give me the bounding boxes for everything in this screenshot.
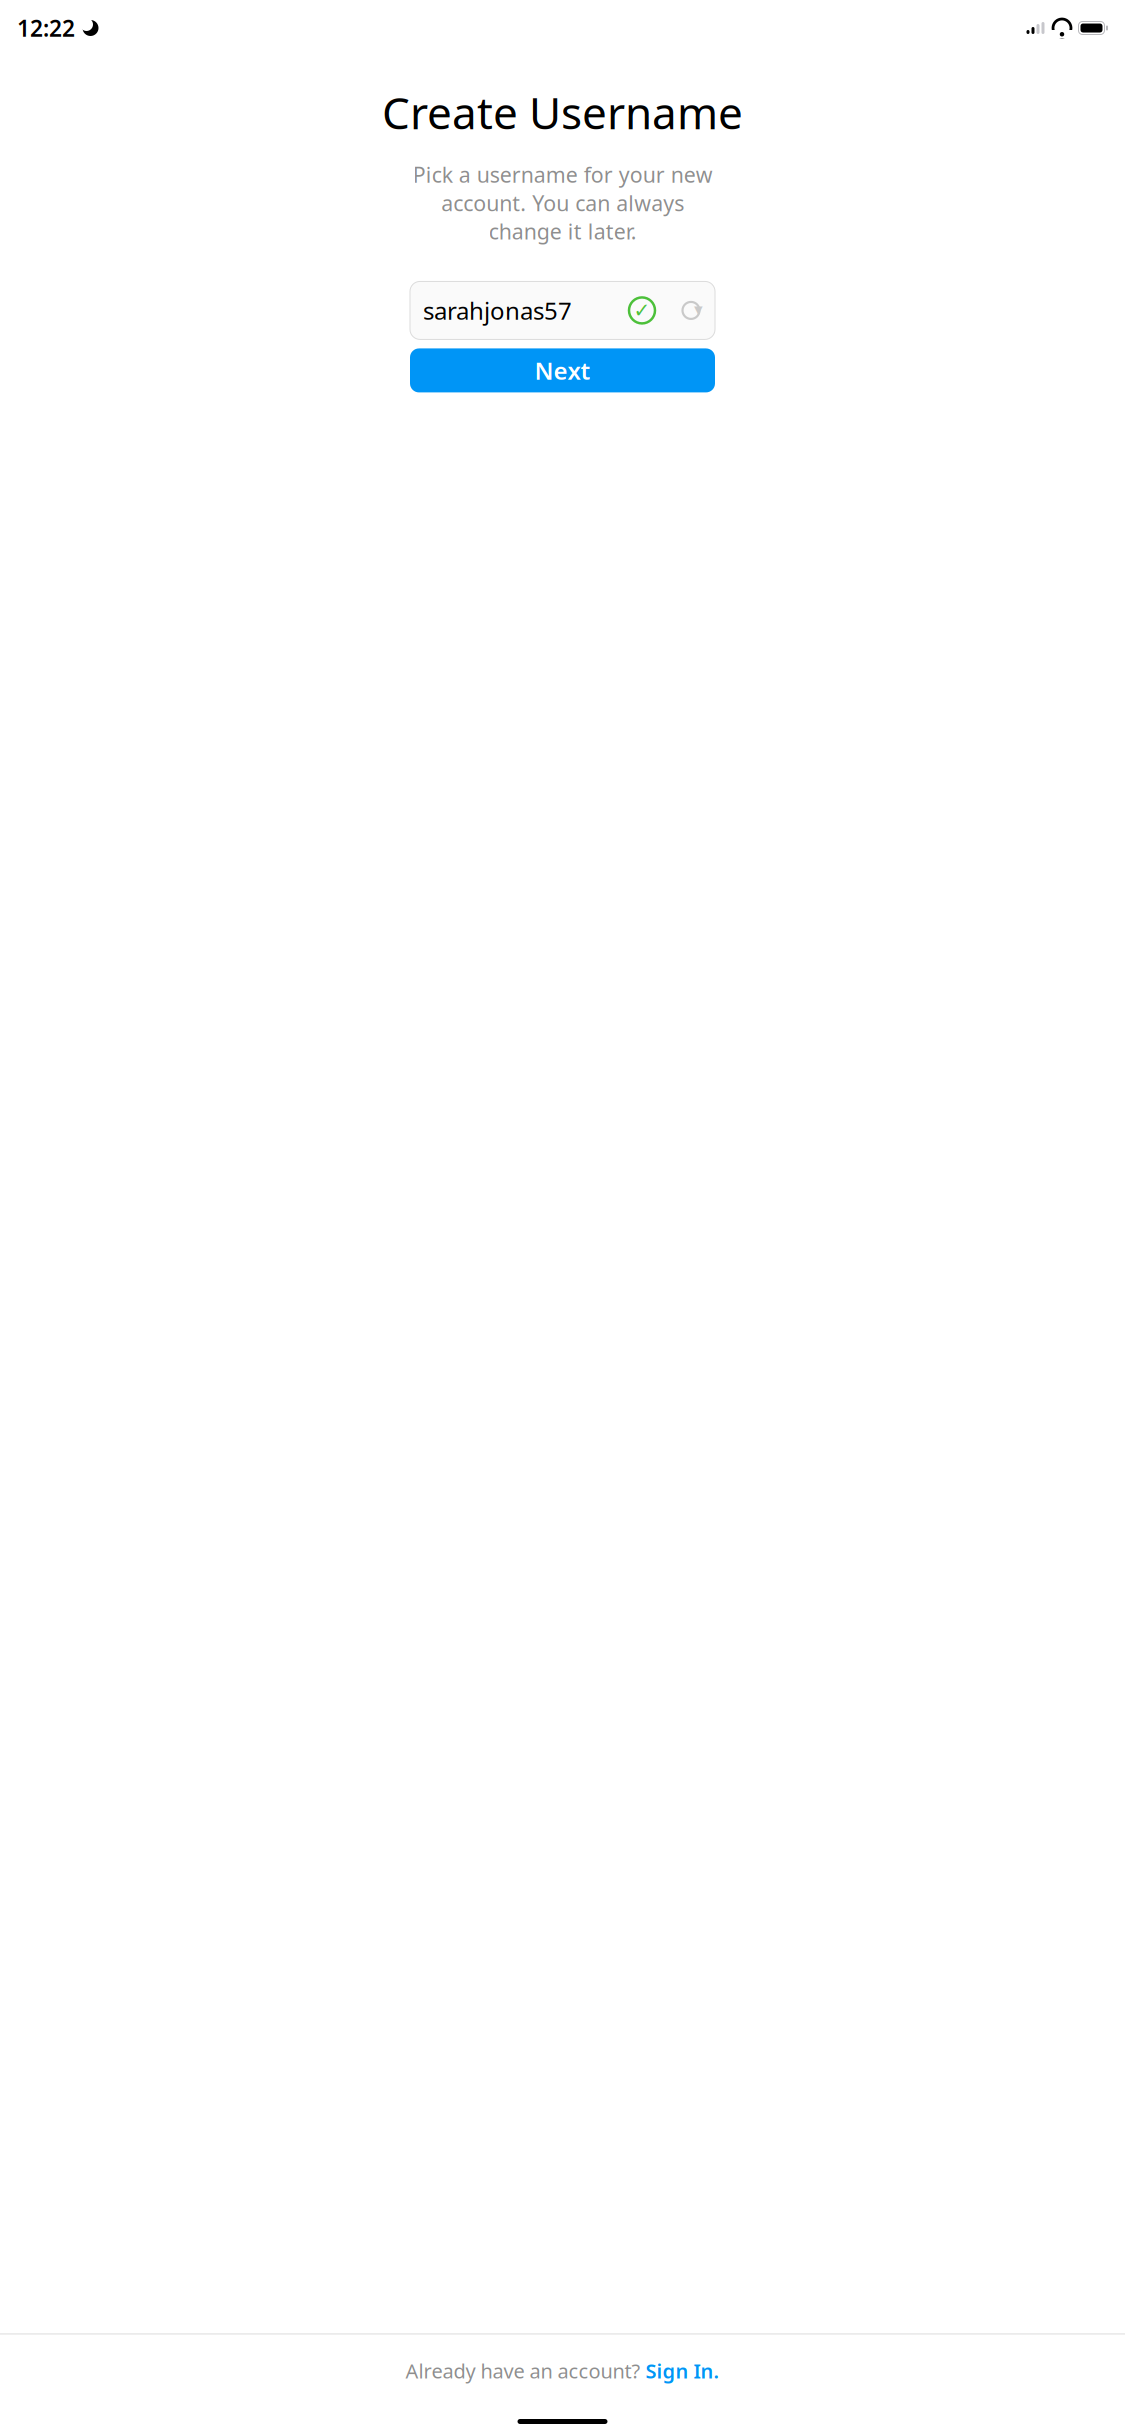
staticText: Already have an account?: [405, 2357, 645, 2384]
staticText: Sign In.: [645, 2357, 719, 2384]
staticText: ▾: [694, 299, 703, 319]
staticText: 12:22: [17, 13, 75, 43]
button[interactable]: sarahjonas57: [410, 281, 715, 339]
button[interactable]: Already have an account?: [0, 2334, 1125, 2407]
staticText: ✓: [633, 299, 650, 322]
staticText: Pick a username for your new account. Yo…: [412, 160, 712, 245]
staticText: sarahjonas57: [423, 294, 572, 326]
staticText: Next: [534, 354, 590, 386]
staticText: Create Username: [382, 83, 743, 141]
button[interactable]: Next: [410, 348, 715, 392]
